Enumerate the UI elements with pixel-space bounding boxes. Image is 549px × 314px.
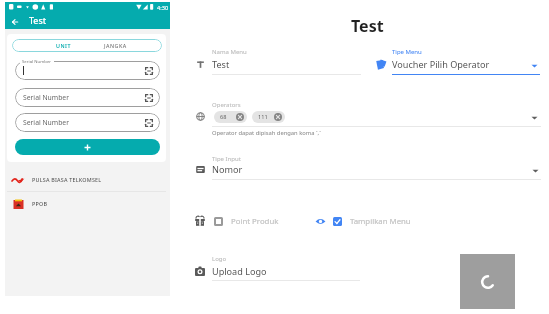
staticText: JANGKA [104, 42, 127, 49]
button[interactable]: JANGKA [94, 39, 162, 52]
staticText: Test [351, 15, 384, 37]
button[interactable]: Dropdown [531, 62, 538, 69]
staticText: Tipe Input [212, 155, 241, 163]
staticText: Nama Menu [212, 48, 247, 56]
button[interactable]: PPOB [5, 191, 170, 215]
staticText: Tampilkan Menu [350, 216, 411, 227]
button[interactable]: Serial Number [15, 113, 160, 132]
button[interactable]: Point Produk [195, 214, 279, 228]
staticText: Test [29, 15, 47, 27]
button[interactable]: UNIT [12, 39, 94, 52]
staticText: 4:30 [157, 4, 169, 12]
staticText: Logo [212, 255, 227, 263]
button[interactable]: PULSA BIASA TELKOMSEL [5, 167, 170, 191]
staticText: Serial Number [23, 118, 70, 127]
staticText: Tipe Menu [392, 48, 422, 56]
button[interactable]: 111 [252, 111, 285, 123]
button[interactable]: Dropdown [531, 114, 538, 121]
staticText: Test [212, 58, 230, 70]
staticText: Upload Logo [212, 265, 267, 277]
staticText: Serial Number [22, 58, 52, 64]
button[interactable]: Serial Number [15, 88, 160, 107]
button[interactable]: 68 [214, 111, 247, 123]
staticText: Operator dapat dipisah dengan koma `,` [212, 129, 321, 137]
button[interactable]: Dropdown [532, 167, 539, 174]
staticText: 68 [220, 113, 227, 121]
button[interactable]: Tampilkan Menu [315, 214, 411, 228]
staticText: PULSA BIASA TELKOMSEL [32, 176, 102, 183]
staticText: UNIT [56, 42, 71, 49]
staticText: Point Produk [231, 216, 279, 227]
staticText: Nomor [212, 163, 243, 175]
button[interactable]: Add [15, 139, 160, 155]
button[interactable]: Back [7, 14, 22, 29]
staticText: Serial Number [23, 93, 70, 102]
staticText: PPOB [32, 200, 48, 207]
staticText: 111 [258, 113, 268, 121]
staticText: Operators [212, 101, 241, 109]
button[interactable] [15, 61, 160, 80]
staticText: Voucher Pilih Operator [392, 58, 490, 70]
